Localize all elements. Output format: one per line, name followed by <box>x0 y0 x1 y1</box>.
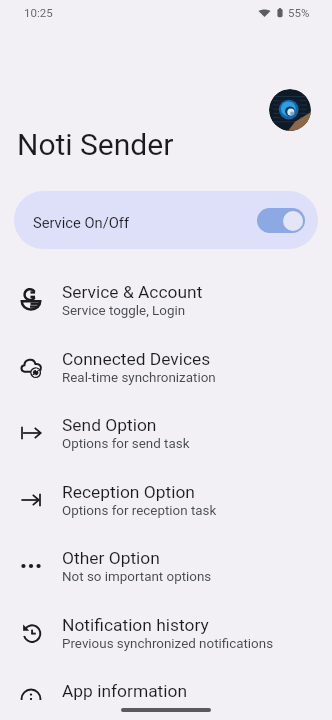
staticText: Service toggle, Login <box>62 303 186 319</box>
staticText: Service & Account <box>62 282 203 302</box>
button[interactable]: Other Option <box>0 533 332 599</box>
staticText: Connected Devices <box>62 349 211 369</box>
staticText: Noti Sender <box>17 127 174 162</box>
button[interactable]: Service on off toggle <box>257 208 305 233</box>
staticText: Version, Developer <box>62 702 173 718</box>
button[interactable]: App information <box>0 666 332 720</box>
staticText: Options for send task <box>62 436 190 452</box>
staticText: 55% <box>288 6 310 19</box>
button[interactable]: Connected Devices <box>0 334 332 400</box>
button[interactable]: Service On/Off <box>14 191 318 249</box>
staticText: Reception Option <box>62 482 195 502</box>
staticText: Send Option <box>62 415 157 435</box>
staticText: Options for reception task <box>62 503 217 519</box>
staticText: Service On/Off <box>33 214 130 231</box>
staticText: Not so important options <box>62 569 212 585</box>
button[interactable]: Service & Account <box>0 267 332 333</box>
button[interactable]: Send Option <box>0 400 332 466</box>
button[interactable]: Profile <box>269 89 311 131</box>
staticText: Previous synchronized notifications <box>62 636 274 652</box>
staticText: Real-time synchronization <box>62 370 216 386</box>
staticText: 10:25 <box>24 6 53 19</box>
button[interactable]: Notification history <box>0 600 332 666</box>
staticText: Other Option <box>62 548 160 568</box>
staticText: App information <box>62 681 188 701</box>
staticText: Notification history <box>62 615 209 635</box>
button[interactable]: Reception Option <box>0 467 332 533</box>
